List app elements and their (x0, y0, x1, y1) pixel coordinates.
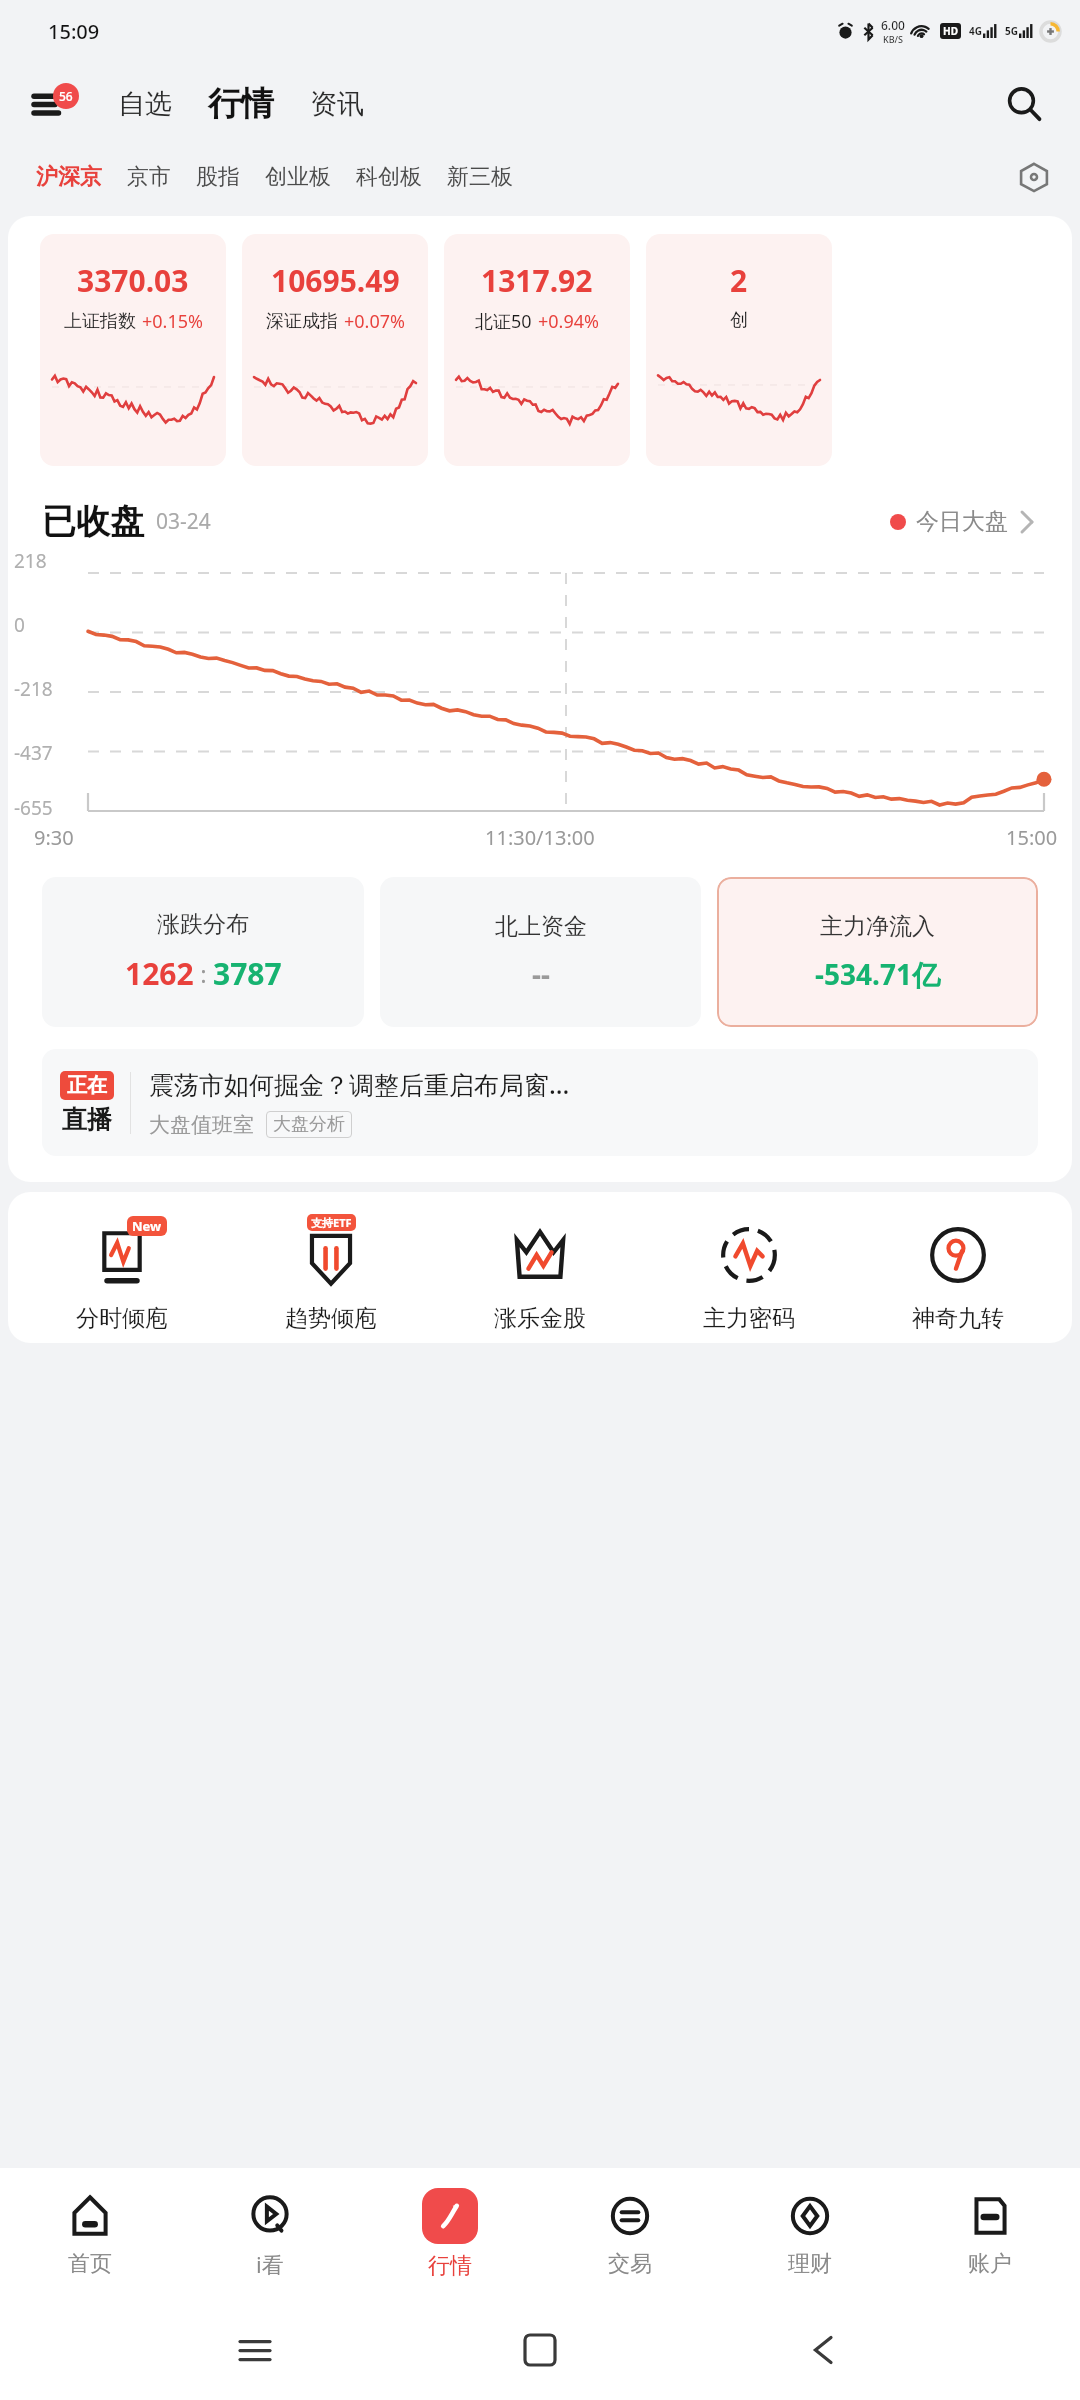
staticText: 支持ETF (311, 1215, 352, 1230)
staticText: 北上资金 (495, 912, 587, 941)
staticText: 已收盘 (42, 500, 144, 543)
button[interactable]: Search (1002, 82, 1046, 126)
staticText: 自选 (118, 87, 172, 121)
button[interactable]: Home (510, 2320, 570, 2380)
button[interactable]: More markets (1012, 155, 1056, 199)
staticText: New (132, 1217, 162, 1235)
staticText: 创业板 (265, 163, 331, 191)
staticText: 分时倾庖 (76, 1304, 168, 1333)
button[interactable]: 创业板 (259, 157, 337, 197)
staticText: 账户 (968, 2250, 1012, 2278)
staticText: 10695.49 (271, 260, 400, 301)
button[interactable]: 行情 (360, 2168, 540, 2300)
staticText: 涨乐金股 (494, 1304, 586, 1333)
staticText: 京市 (127, 163, 171, 191)
button[interactable]: Menu (30, 86, 72, 122)
staticText: -- (532, 955, 550, 993)
staticText: 15:00 (1006, 824, 1058, 851)
staticText: 56 (59, 88, 73, 104)
button[interactable]: 1317.92 (444, 234, 630, 466)
staticText: 交易 (608, 2250, 652, 2278)
button[interactable]: 新三板 (441, 157, 519, 197)
staticText: 行情 (428, 2252, 472, 2280)
staticText: -437 (14, 740, 53, 766)
staticText: 主力密码 (703, 1304, 795, 1333)
button[interactable]: 主力密码 (654, 1218, 844, 1333)
button[interactable]: 神奇九转 (863, 1218, 1053, 1333)
staticText: 9:30 (34, 824, 74, 851)
staticText: 行情 (208, 83, 274, 125)
staticText: 4G (969, 24, 982, 38)
button[interactable]: Back (795, 2320, 855, 2380)
button[interactable]: 今日大盘 (886, 503, 1038, 540)
staticText: HD (943, 24, 958, 38)
button[interactable]: 账户 (900, 2168, 1080, 2300)
staticText: +0.94% (538, 309, 599, 334)
staticText: 沪深京 (36, 163, 102, 191)
staticText: -655 (14, 795, 53, 821)
staticText: 0 (14, 612, 25, 638)
staticText: -534.71亿 (815, 955, 940, 993)
staticText: 股指 (196, 163, 240, 191)
staticText: 大盘值班室 (149, 1112, 254, 1138)
button[interactable]: 交易 (540, 2168, 720, 2300)
staticText: 正在 (67, 1073, 107, 1098)
button[interactable]: 科创板 (350, 157, 428, 197)
staticText: 11:30/13:00 (485, 824, 595, 851)
button[interactable]: 2 (646, 234, 832, 466)
staticText: 理财 (788, 2250, 832, 2278)
button[interactable]: Recents (225, 2320, 285, 2380)
staticText: 1317.92 (481, 260, 593, 301)
staticText: 今日大盘 (916, 507, 1008, 536)
button[interactable]: 京市 (121, 157, 177, 197)
button[interactable]: 涨乐金股 (445, 1218, 635, 1333)
staticText: 首页 (68, 2250, 112, 2278)
staticText: 直播 (62, 1104, 112, 1135)
staticText: 创 (730, 309, 748, 332)
staticText: 5G (1005, 24, 1018, 38)
staticText: 1262 (125, 953, 194, 994)
staticText: 3370.03 (77, 260, 189, 301)
button[interactable]: 行情 (204, 83, 278, 125)
staticText: 03-24 (156, 507, 211, 536)
staticText: 15:09 (48, 18, 100, 45)
staticText: -218 (14, 676, 53, 702)
staticText: 深证成指 (266, 310, 338, 333)
staticText: KB/S (883, 33, 903, 45)
staticText: 大盘分析 (273, 1113, 345, 1136)
staticText: 3787 (213, 953, 282, 994)
staticText: 上证指数 (64, 310, 136, 333)
button[interactable]: 自选 (114, 87, 176, 121)
staticText: : (194, 957, 213, 990)
staticText: 神奇九转 (912, 1304, 1004, 1333)
staticText: +0.07% (344, 309, 405, 334)
button[interactable]: 股指 (190, 157, 246, 197)
staticText: 218 (14, 548, 47, 574)
staticText: 资讯 (310, 87, 364, 121)
button[interactable]: 首页 (0, 2168, 180, 2300)
button[interactable]: 正在 (42, 1049, 1038, 1156)
staticText: 科创板 (356, 163, 422, 191)
button[interactable]: 资讯 (306, 87, 368, 121)
staticText: 北证50 (475, 309, 532, 334)
button[interactable]: 涨跌分布 (42, 877, 364, 1027)
staticText: i看 (256, 2249, 284, 2279)
staticText: 2 (730, 260, 748, 301)
button[interactable]: New (27, 1218, 217, 1333)
staticText: 震荡市如何掘金？调整后重启布局窗... (149, 1067, 570, 1101)
button[interactable]: i看 (180, 2168, 360, 2300)
staticText: 涨跌分布 (157, 910, 249, 939)
staticText: 6.00 (881, 17, 905, 33)
button[interactable]: 3370.03 (40, 234, 226, 466)
button[interactable]: 理财 (720, 2168, 900, 2300)
staticText: 趋势倾庖 (285, 1304, 377, 1333)
button[interactable]: 沪深京 (30, 157, 108, 197)
button[interactable]: 北上资金 (380, 877, 701, 1027)
button[interactable]: 支持ETF (236, 1218, 426, 1333)
staticText: +0.15% (142, 309, 203, 334)
button[interactable]: 主力净流入 (717, 877, 1038, 1027)
button[interactable]: 10695.49 (242, 234, 428, 466)
staticText: 主力净流入 (820, 912, 935, 941)
staticText: 新三板 (447, 163, 513, 191)
